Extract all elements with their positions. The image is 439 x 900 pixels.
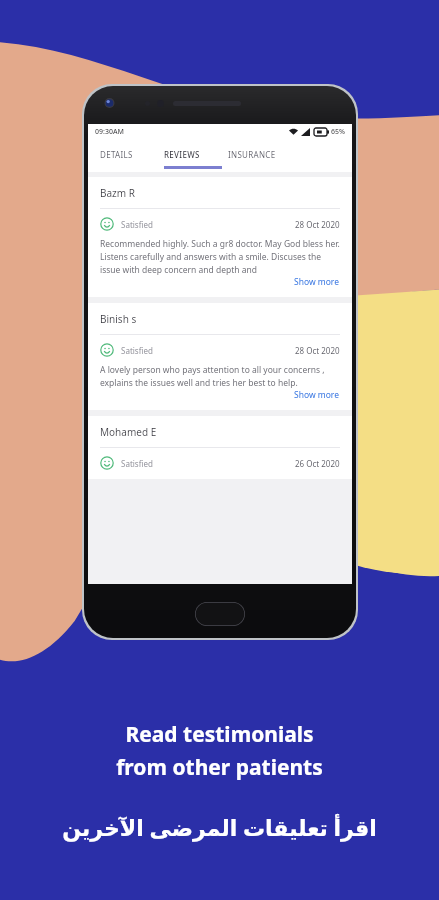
staticText: 65% bbox=[331, 127, 345, 137]
other: Satisfied bbox=[100, 217, 114, 231]
staticText: Mohamed E bbox=[100, 425, 157, 439]
staticText: 26 Oct 2020 bbox=[295, 458, 340, 469]
staticText: Satisfied bbox=[121, 219, 153, 230]
staticText: Binish s bbox=[100, 312, 137, 326]
staticText: REVIEWS bbox=[164, 149, 200, 160]
button[interactable]: DETAILS bbox=[100, 140, 164, 172]
button[interactable]: Binish s bbox=[88, 303, 352, 410]
staticText: Satisfied bbox=[121, 345, 153, 356]
button[interactable]: Show more bbox=[294, 389, 340, 401]
button[interactable]: Mohamed E bbox=[88, 416, 352, 479]
staticText: Show more bbox=[294, 389, 340, 401]
staticText: Satisfied bbox=[121, 458, 153, 469]
staticText: 28 Oct 2020 bbox=[295, 219, 340, 230]
staticText: DETAILS bbox=[100, 149, 133, 160]
staticText: Recommended highly. Such a gr8 doctor. M… bbox=[100, 238, 340, 276]
button[interactable]: Bazm R bbox=[88, 177, 352, 297]
button[interactable]: Show more bbox=[294, 276, 340, 288]
staticText: 28 Oct 2020 bbox=[295, 345, 340, 356]
button[interactable]: REVIEWS bbox=[164, 140, 228, 172]
other: Satisfied bbox=[100, 456, 114, 470]
staticText: 09:30AM bbox=[95, 127, 124, 137]
staticText: A lovely person who pays attention to al… bbox=[100, 364, 340, 389]
staticText: from other patients bbox=[116, 753, 323, 782]
staticText: Bazm R bbox=[100, 186, 135, 200]
button[interactable]: INSURANCE bbox=[228, 140, 306, 172]
staticText: Show more bbox=[294, 276, 340, 288]
other: Satisfied bbox=[100, 343, 114, 357]
staticText: INSURANCE bbox=[228, 149, 276, 160]
staticText: اقرأ تعليقات المرضى الآخرين bbox=[62, 812, 377, 842]
staticText: Read testimonials bbox=[125, 720, 314, 749]
